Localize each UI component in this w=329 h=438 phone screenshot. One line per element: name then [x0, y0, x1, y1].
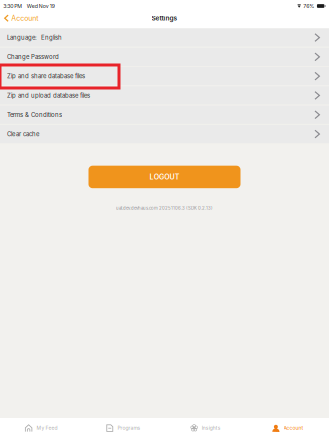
staticText: Zip and share database files [7, 72, 85, 80]
button[interactable]: Language: English [0, 28, 329, 48]
button[interactable]: Account [0, 14, 38, 22]
button[interactable]: Clear cache [0, 125, 329, 144]
staticText: Language: English [7, 34, 62, 41]
staticText: LOGOUT [149, 173, 180, 181]
button[interactable]: Zip and share database files [0, 67, 329, 86]
button[interactable]: Programs [82, 418, 164, 438]
button[interactable]: My Feed [0, 418, 82, 438]
button[interactable]: Account [247, 418, 329, 438]
staticText: uat.dev.devhaus.com 20251106.3 (SDK 0.2.… [116, 206, 213, 211]
button[interactable]: Insights [164, 418, 247, 438]
staticText: Insights [202, 425, 221, 431]
staticText: Settings [151, 14, 177, 22]
staticText: Terms & Conditions [7, 111, 62, 118]
staticText: Account [11, 14, 38, 22]
button[interactable]: Change Password [0, 48, 329, 67]
staticText: 3:30 PM [3, 3, 22, 9]
button[interactable]: LOGOUT [88, 166, 240, 188]
staticText: Change Password [7, 53, 59, 60]
button[interactable]: Terms & Conditions [0, 106, 329, 125]
staticText: Zip and upload database files [7, 92, 90, 99]
staticText: Programs [118, 425, 141, 431]
staticText: My Feed [36, 425, 57, 431]
staticText: Clear cache [7, 130, 39, 138]
staticText: 76% [303, 3, 314, 9]
staticText: Wed Nov 19 [27, 3, 55, 9]
staticText: Account [284, 425, 304, 431]
button[interactable]: Zip and upload database files [0, 86, 329, 106]
